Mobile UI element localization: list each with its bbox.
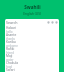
button[interactable]: Karibu	[5, 40, 59, 47]
button[interactable]: Maji	[5, 54, 59, 61]
staticText: Safari	[6, 68, 15, 72]
button[interactable]: Safari	[5, 68, 59, 72]
staticText: Rafiki	[6, 47, 15, 51]
staticText: Search	[6, 20, 18, 25]
button[interactable]: Search	[5, 19, 59, 26]
staticText: food	[6, 65, 13, 68]
button[interactable]: Chakula	[5, 61, 59, 68]
other: Translate	[47, 21, 50, 24]
button[interactable]: Rafiki	[5, 47, 59, 54]
staticText: Karibu	[6, 40, 16, 44]
staticText: Chakula	[6, 61, 19, 65]
staticText: English (US)	[23, 12, 41, 16]
staticText: Swahili	[24, 4, 41, 10]
staticText: Habari	[6, 26, 17, 30]
staticText: thanks	[6, 37, 15, 40]
staticText: Maji	[6, 54, 13, 58]
other: Camera	[55, 21, 58, 24]
staticText: Asante	[6, 33, 17, 37]
staticText: friend	[6, 51, 14, 54]
staticText: welcome	[6, 44, 18, 47]
staticText: hello	[6, 30, 13, 33]
other: Voice search	[51, 21, 54, 24]
staticText: water	[6, 58, 14, 61]
button[interactable]: Habari	[5, 26, 59, 33]
button[interactable]: Asante	[5, 33, 59, 40]
